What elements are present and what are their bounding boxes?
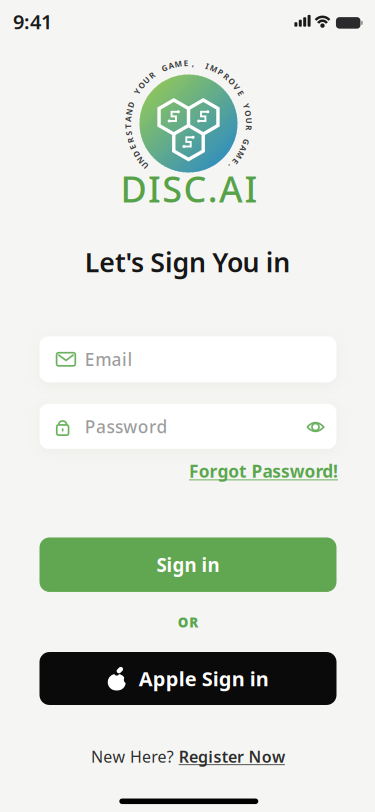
button[interactable]: Register Now — [179, 746, 285, 767]
staticText: U — [143, 75, 149, 85]
staticText: R — [246, 122, 251, 133]
staticText: R — [149, 70, 154, 81]
button[interactable]: Apple Sign in — [39, 652, 336, 705]
staticText: M — [174, 58, 182, 69]
staticText: Register Now — [179, 746, 285, 767]
staticText: DISC.AI — [121, 165, 257, 212]
staticText: A — [125, 114, 131, 124]
staticText: Password — [85, 415, 167, 438]
staticText: O — [245, 108, 251, 118]
staticText: Apple Sign in — [139, 665, 269, 692]
staticText: New Here? — [91, 746, 174, 767]
staticText: A — [240, 143, 246, 154]
staticText: I — [206, 61, 209, 71]
staticText: M — [236, 150, 244, 161]
staticText: , — [192, 58, 194, 68]
staticText: P — [218, 67, 223, 77]
staticText: G — [161, 63, 167, 73]
staticText: 9:41 — [13, 8, 52, 35]
button[interactable]: Show password — [298, 410, 332, 444]
staticText: Y — [135, 86, 140, 97]
staticText: E — [234, 156, 238, 166]
staticText: R — [224, 71, 229, 82]
staticText: M — [210, 63, 218, 74]
staticText: Sign in — [156, 552, 219, 577]
staticText — [247, 130, 249, 140]
staticText: E — [184, 58, 188, 68]
staticText: A — [168, 60, 174, 71]
staticText: T — [126, 121, 131, 131]
staticText: S — [127, 128, 131, 139]
button[interactable]: Forgot Password! — [189, 459, 338, 482]
staticText: D — [133, 149, 139, 159]
staticText: V — [234, 81, 239, 92]
staticText: Email — [85, 348, 132, 371]
staticText: Let's Sign You in — [85, 244, 290, 280]
button[interactable]: Password — [39, 404, 336, 449]
staticText: O — [229, 76, 235, 86]
staticText: E — [239, 87, 243, 98]
staticText: O — [138, 80, 144, 91]
staticText: OR — [178, 613, 198, 631]
staticText: Forgot Password! — [189, 459, 338, 482]
staticText: U — [142, 160, 148, 171]
button[interactable]: Email — [39, 336, 336, 382]
staticText: E — [131, 142, 135, 153]
staticText: D — [128, 99, 134, 110]
staticText — [133, 92, 135, 103]
staticText: N — [137, 155, 144, 165]
staticText: N — [126, 106, 133, 117]
staticText: U — [246, 115, 252, 126]
button[interactable]: Sign in — [39, 537, 336, 592]
staticText: Y — [244, 101, 249, 111]
staticText: G — [243, 137, 249, 147]
staticText: R — [128, 135, 133, 146]
